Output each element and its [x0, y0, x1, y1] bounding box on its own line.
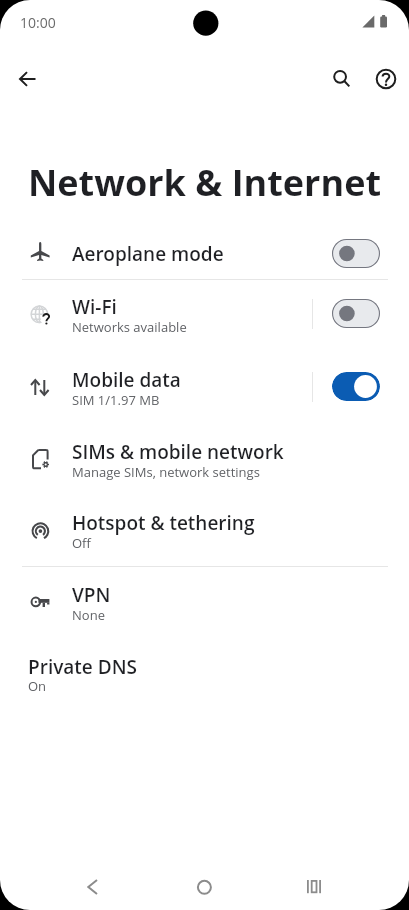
button[interactable]: On	[332, 372, 380, 401]
staticText: Mobile data	[72, 367, 181, 393]
staticText: VPN	[72, 582, 111, 608]
staticText: Hotspot & tethering	[72, 510, 255, 536]
button[interactable]	[0, 426, 409, 490]
button[interactable]: Back	[69, 863, 117, 910]
staticText: Wi-Fi	[72, 294, 117, 320]
staticText: None	[72, 606, 105, 624]
staticText: Manage SIMs, network settings	[72, 463, 260, 481]
button[interactable]	[0, 228, 409, 278]
staticText: 10:00	[20, 13, 56, 32]
button[interactable]: Home	[180, 863, 228, 910]
staticText: SIM 1/1.97 MB	[72, 391, 160, 409]
staticText: Networks available	[72, 318, 187, 336]
staticText: Off	[72, 534, 91, 552]
staticText: Aeroplane mode	[72, 241, 224, 267]
button[interactable]: Recent apps	[291, 863, 339, 910]
button[interactable]: Search	[318, 55, 366, 103]
button[interactable]	[0, 641, 409, 705]
staticText: SIMs & mobile network	[72, 439, 284, 465]
button[interactable]: Navigate up	[2, 55, 50, 103]
button[interactable]	[0, 282, 409, 346]
button[interactable]	[0, 355, 409, 419]
button[interactable]	[0, 569, 409, 633]
button[interactable]: Help	[362, 55, 409, 103]
button[interactable]	[0, 498, 409, 562]
staticText: On	[28, 677, 47, 695]
button[interactable]: Off	[332, 299, 380, 328]
button[interactable]: Off	[332, 239, 380, 268]
staticText: Network & Internet	[28, 158, 382, 207]
staticText: Private DNS	[28, 654, 137, 680]
